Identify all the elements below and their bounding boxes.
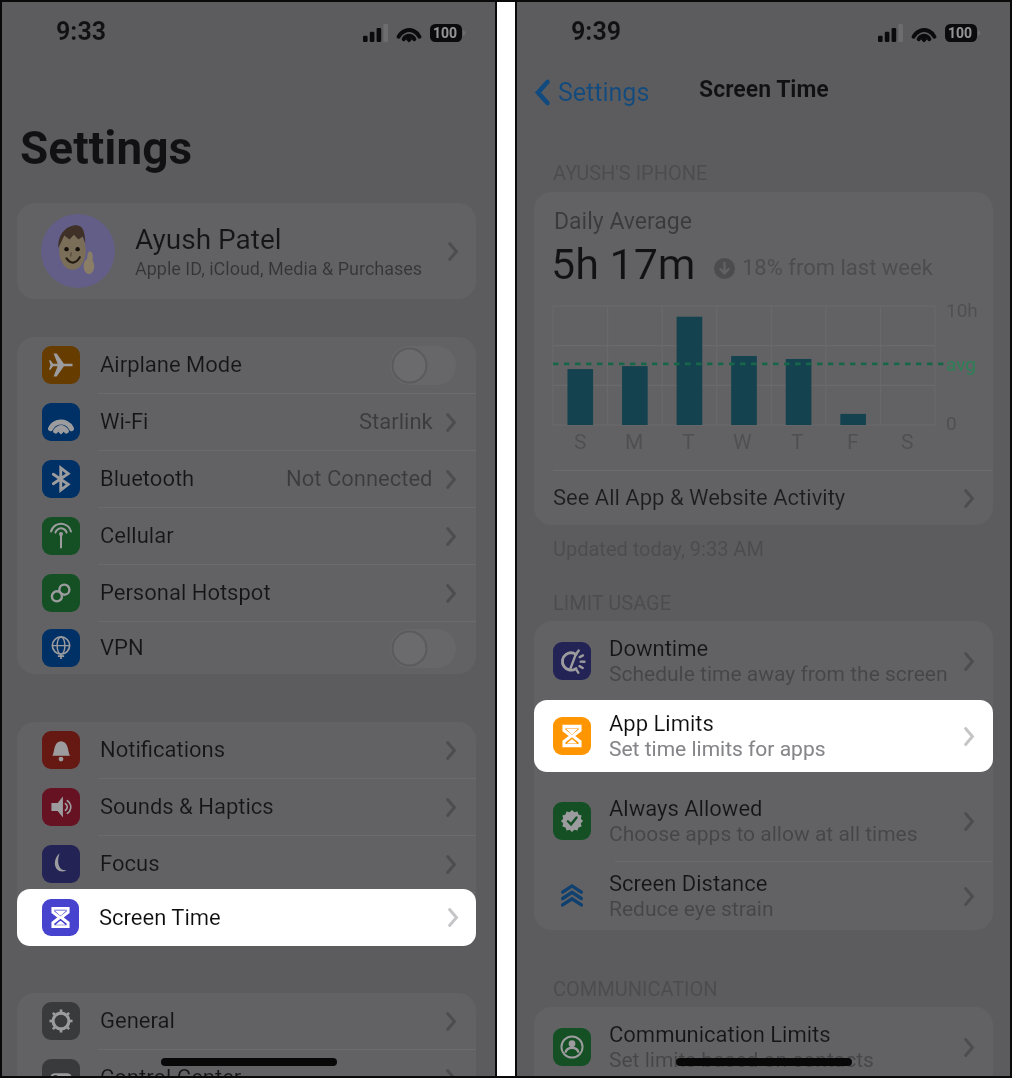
staticText: 9:39 [571, 17, 622, 46]
staticText: Screen Time [99, 905, 448, 931]
button[interactable]: Communication Limits [534, 1007, 993, 1078]
staticText: Sounds & Haptics [100, 794, 446, 820]
staticText: 10h [946, 299, 978, 321]
button[interactable]: Bluetooth [17, 451, 476, 507]
staticText: Cellular [100, 523, 446, 549]
staticText: COMMUNICATION [553, 977, 718, 1000]
staticText: Set limits based on contacts [609, 1048, 874, 1073]
staticText: S [574, 430, 587, 455]
button[interactable]: See All App & Website Activity [534, 471, 993, 525]
staticText: Screen Distance [609, 871, 768, 897]
button[interactable]: Downtime [534, 621, 993, 701]
staticText: Control Center [100, 1065, 446, 1078]
button[interactable]: Toggle [390, 346, 456, 385]
staticText: 9:33 [56, 17, 107, 46]
staticText: F [847, 430, 859, 455]
staticText: App Limits [609, 711, 714, 737]
staticText: 0 [946, 412, 957, 434]
staticText: M [625, 430, 644, 455]
staticText: Personal Hotspot [100, 580, 446, 606]
button[interactable]: Settings [529, 72, 656, 112]
button[interactable]: Screen Distance [534, 862, 993, 930]
staticText: AYUSH'S IPHONE [553, 161, 708, 184]
staticText: Wi-Fi [100, 409, 359, 435]
staticText: See All App & Website Activity [553, 485, 964, 511]
staticText: T [791, 430, 804, 455]
staticText: Apple ID, iCloud, Media & Purchases [135, 258, 423, 279]
staticText: Communication Limits [609, 1022, 831, 1048]
staticText: Ayush Patel [135, 223, 282, 256]
staticText: Bluetooth [100, 466, 286, 492]
staticText: Not Connected [286, 466, 433, 492]
staticText: Screen Time [699, 76, 829, 103]
staticText: 18% from last week [742, 255, 933, 281]
staticText: 100 [948, 25, 973, 41]
button[interactable]: Toggle [390, 629, 456, 668]
staticText: Always Allowed [609, 796, 763, 822]
button[interactable]: Focus [17, 836, 476, 892]
button[interactable]: Screen Time [17, 889, 476, 946]
button[interactable]: General [17, 993, 476, 1049]
button[interactable]: Always Allowed [534, 781, 993, 861]
staticText: Set time limits for apps [609, 737, 826, 762]
staticText: 100 [433, 25, 458, 41]
staticText: avg [946, 353, 976, 375]
staticText: Daily Average [554, 208, 692, 235]
staticText: Notifications [100, 737, 446, 763]
staticText: Choose apps to allow at all times [609, 822, 918, 847]
staticText: Focus [100, 851, 446, 877]
staticText: S [901, 430, 914, 455]
button[interactable]: Ayush Patel [17, 203, 476, 299]
staticText: Reduce eye strain [609, 897, 774, 922]
button[interactable]: Airplane Mode [17, 337, 476, 393]
staticText: Settings [558, 78, 650, 107]
staticText: Airplane Mode [100, 352, 390, 378]
staticText: Downtime [609, 636, 709, 662]
staticText: Schedule time away from the screen [609, 662, 948, 687]
staticText: VPN [100, 635, 390, 661]
button[interactable]: Control Center [17, 1050, 476, 1078]
staticText: 5h 17m [551, 239, 696, 289]
button[interactable]: VPN [17, 622, 476, 674]
staticText: T [682, 430, 695, 455]
staticText: Updated today, 9:33 AM [553, 537, 764, 560]
button[interactable]: Notifications [17, 722, 476, 778]
staticText: W [733, 430, 752, 455]
button[interactable]: Wi-Fi [17, 394, 476, 450]
button[interactable]: Personal Hotspot [17, 565, 476, 621]
staticText: Settings [20, 121, 193, 175]
staticText: Starlink [359, 409, 433, 435]
button[interactable]: App Limits [534, 700, 993, 772]
staticText: LIMIT USAGE [553, 591, 672, 614]
staticText: General [100, 1008, 446, 1034]
button[interactable]: Cellular [17, 508, 476, 564]
button[interactable]: Sounds & Haptics [17, 779, 476, 835]
